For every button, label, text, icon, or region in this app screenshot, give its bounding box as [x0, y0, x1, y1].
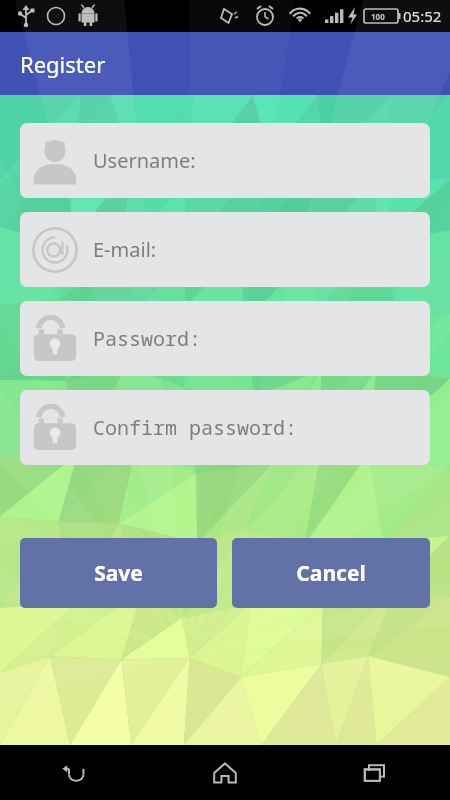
button[interactable]: E-mail: — [20, 212, 430, 287]
button[interactable]: Recent apps — [300, 745, 450, 800]
staticText: Register — [20, 49, 106, 79]
staticText: E-mail: — [93, 236, 157, 263]
button[interactable]: Password: — [20, 301, 430, 376]
button[interactable]: Username: — [20, 123, 430, 198]
staticText: 05:52 — [403, 6, 442, 26]
button[interactable]: Back — [0, 745, 150, 800]
staticText: Confirm password: — [93, 414, 297, 441]
button[interactable]: Save — [20, 538, 217, 608]
staticText: Save — [94, 559, 143, 588]
button[interactable]: Home — [150, 745, 300, 800]
staticText: Password: — [93, 325, 201, 352]
staticText: 100 — [371, 11, 385, 22]
staticText: Cancel — [296, 559, 366, 588]
button[interactable]: Cancel — [232, 538, 430, 608]
staticText: Username: — [93, 147, 196, 174]
button[interactable]: Confirm password: — [20, 390, 430, 465]
